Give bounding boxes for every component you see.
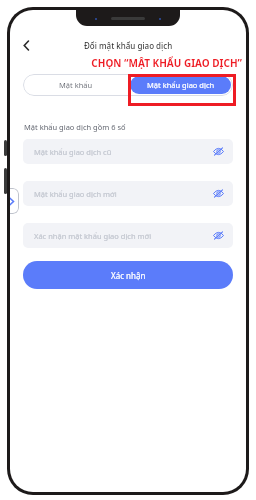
button[interactable]: Toggle password visibility bbox=[213, 230, 224, 241]
staticText: CHỌN “MẬT KHẨU GIAO DỊCH” bbox=[91, 56, 242, 70]
staticText: Mật khẩu giao dịch bbox=[147, 80, 215, 90]
button[interactable]: Mật khẩu giao dịch mới bbox=[23, 181, 233, 206]
button[interactable]: Xác nhận mật khẩu giao dịch mới bbox=[23, 223, 233, 248]
button[interactable]: Toggle password visibility bbox=[213, 188, 224, 199]
button[interactable]: Mật khẩu giao dịch cũ bbox=[23, 139, 233, 164]
staticText: Mật khẩu giao dịch mới bbox=[34, 189, 117, 199]
staticText: Mật khẩu giao dịch cũ bbox=[34, 147, 112, 157]
staticText: Mật khẩu bbox=[59, 80, 93, 90]
staticText: Xác nhận mật khẩu giao dịch mới bbox=[34, 231, 152, 241]
button[interactable]: Xác nhận bbox=[23, 261, 233, 289]
button[interactable]: Mật khẩu giao dịch bbox=[130, 76, 231, 94]
button[interactable]: Expand panel bbox=[10, 188, 19, 214]
button[interactable]: Mật khẩu bbox=[23, 74, 128, 96]
staticText: Đổi mật khẩu giao dịch bbox=[84, 40, 173, 51]
staticText: Mật khẩu giao dịch gồm 6 số bbox=[24, 122, 126, 132]
staticText: Xác nhận bbox=[111, 270, 146, 281]
button[interactable]: Toggle password visibility bbox=[213, 146, 224, 157]
button[interactable]: Back bbox=[16, 35, 36, 55]
